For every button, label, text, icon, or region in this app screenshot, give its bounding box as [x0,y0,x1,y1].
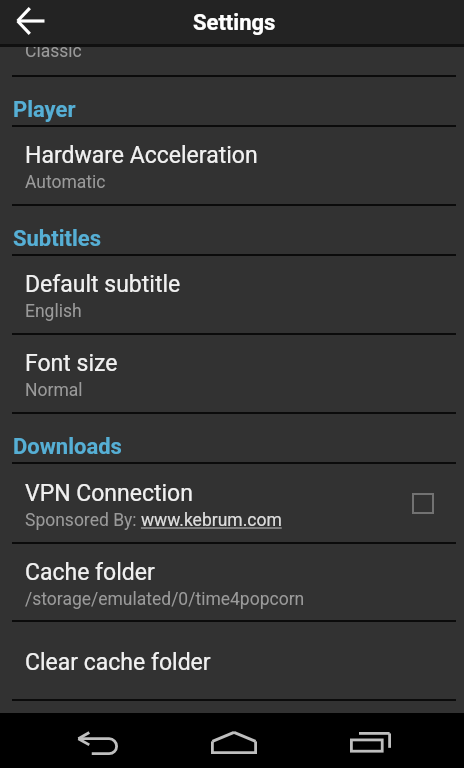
staticText: Font size [25,350,118,377]
staticText: Sponsored By: www.kebrum.com [25,510,282,531]
staticText: Cache folder [25,559,155,586]
button[interactable]: Default subtitle [0,256,464,335]
button[interactable]: Recent apps [334,716,406,768]
button[interactable]: Back [61,717,133,768]
staticText: Downloads [13,434,122,460]
button[interactable]: Navigate up [9,0,53,43]
button[interactable]: VPN Connection [0,464,464,544]
button[interactable]: Font size [0,335,464,414]
staticText: Subtitles [13,226,101,252]
staticText: /storage/emulated/0/time4popcorn [25,589,305,610]
button[interactable]: Cache folder [0,544,464,622]
staticText: Settings [193,10,276,36]
staticText: Clear cache folder [25,649,211,676]
button[interactable]: Home [198,716,270,768]
staticText: Default subtitle [25,271,181,298]
staticText: VPN Connection [25,480,193,507]
button[interactable]: Hardware Acceleration [0,127,464,206]
staticText: Automatic [25,172,106,193]
staticText: Player [13,97,76,123]
staticText: English [25,301,82,322]
staticText: Normal [25,380,83,401]
staticText: Classic [25,47,82,62]
button[interactable]: VPN Connection checkbox [412,493,434,514]
staticText: Hardware Acceleration [25,142,258,169]
button[interactable]: Clear cache folder [0,622,464,701]
